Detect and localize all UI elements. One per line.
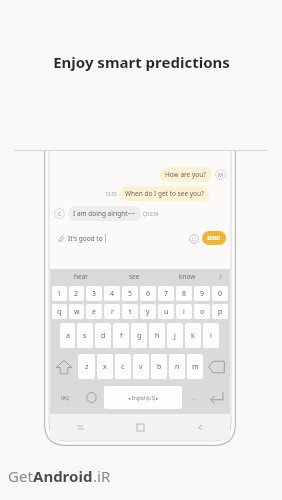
button[interactable]: When do I get to see you? <box>120 186 209 201</box>
staticText: e <box>92 307 96 317</box>
staticText: g <box>137 331 142 341</box>
button[interactable]: d <box>95 323 111 348</box>
staticText: Android <box>33 466 93 486</box>
button[interactable]: l <box>203 323 219 348</box>
button[interactable]: M <box>215 169 226 180</box>
staticText: 12:33 <box>105 191 117 197</box>
button[interactable]: ◂ English(US) ▸ <box>104 386 182 409</box>
button[interactable]: w <box>69 304 84 319</box>
button[interactable]: q <box>52 304 67 319</box>
button[interactable]: y <box>140 304 156 319</box>
staticText: h <box>155 331 160 341</box>
button[interactable]: 6 <box>140 286 156 301</box>
button[interactable]: u <box>158 304 174 319</box>
button[interactable]: g <box>131 323 147 348</box>
staticText: 2 <box>74 289 79 299</box>
staticText: j <box>174 331 176 341</box>
button[interactable]: 9 <box>194 286 210 301</box>
button[interactable]: Recents <box>50 414 110 440</box>
staticText: 8 <box>182 289 187 299</box>
button[interactable]: 8 <box>176 286 192 301</box>
button[interactable]: m <box>187 354 203 379</box>
button[interactable]: 7 <box>158 286 174 301</box>
button[interactable]: o <box>194 304 210 319</box>
button[interactable]: 5 <box>122 286 138 301</box>
button[interactable]: Enter <box>205 386 228 409</box>
staticText: 6 <box>146 289 151 299</box>
button[interactable]: hear <box>54 269 108 284</box>
staticText: know <box>179 272 196 281</box>
staticText: 9 <box>200 289 205 299</box>
button[interactable]: h <box>149 323 165 348</box>
staticText: Enjoy smart predictions <box>53 52 230 72</box>
button[interactable]: C <box>54 208 65 219</box>
staticText: . <box>193 394 195 402</box>
button[interactable]: a <box>60 323 75 348</box>
staticText: ◂ English(US) ▸ <box>128 395 159 401</box>
staticText: SEND <box>207 235 221 242</box>
button[interactable]: SEND <box>202 231 226 245</box>
button[interactable]: s <box>77 323 93 348</box>
staticText: 3 <box>92 289 97 299</box>
button[interactable]: x <box>97 354 113 379</box>
button[interactable]: Attach file <box>54 231 68 245</box>
button[interactable]: know <box>161 269 214 284</box>
button[interactable]: v <box>133 354 149 379</box>
button[interactable]: Backspace <box>205 355 228 379</box>
staticText: z <box>85 362 89 372</box>
button[interactable]: 4 <box>104 286 120 301</box>
staticText: b <box>157 362 162 372</box>
staticText: l <box>210 331 212 341</box>
button[interactable]: Shift <box>52 355 76 379</box>
button[interactable]: I am doing alright~~ <box>68 206 141 221</box>
button[interactable]: Home <box>110 414 170 440</box>
button[interactable]: e <box>86 304 102 319</box>
staticText: t <box>129 307 132 317</box>
button[interactable]: n <box>169 354 185 379</box>
button[interactable]: i <box>176 304 192 319</box>
staticText: I am doing alright~~ <box>73 209 136 218</box>
button[interactable]: 1 <box>52 286 67 301</box>
staticText: u <box>164 307 169 317</box>
button[interactable]: j <box>167 323 183 348</box>
staticText: y <box>146 307 150 317</box>
staticText: s <box>83 331 87 341</box>
button[interactable]: p <box>212 304 228 319</box>
staticText: d <box>101 331 106 341</box>
button[interactable]: Back <box>170 414 230 440</box>
button[interactable]: t <box>122 304 138 319</box>
staticText: 4 <box>110 289 115 299</box>
staticText: hear <box>74 272 89 281</box>
staticText: c <box>121 362 125 372</box>
staticText: f <box>120 331 123 341</box>
staticText: i <box>183 307 185 317</box>
staticText: m <box>192 362 199 372</box>
staticText: 7 <box>164 289 169 299</box>
button[interactable]: see <box>108 269 161 284</box>
button[interactable]: b <box>151 354 167 379</box>
staticText: C <box>58 210 62 217</box>
staticText: Get <box>8 466 33 486</box>
staticText: see <box>129 272 140 281</box>
button[interactable]: !#☺ <box>52 386 79 409</box>
button[interactable]: 2 <box>69 286 84 301</box>
staticText: !#☺ <box>61 395 70 401</box>
button[interactable]: Emoji <box>187 232 200 245</box>
button[interactable]: z <box>78 354 95 379</box>
button[interactable]: How are you? <box>160 167 212 182</box>
staticText: M <box>218 171 223 178</box>
staticText: It's good to <box>68 234 103 243</box>
button[interactable]: c <box>115 354 131 379</box>
staticText: a <box>66 331 70 341</box>
button[interactable]: k <box>185 323 201 348</box>
staticText: 5 <box>128 289 133 299</box>
staticText: When do I get to see you? <box>125 189 204 198</box>
button[interactable]: f <box>113 323 129 348</box>
button[interactable]: 0 <box>212 286 228 301</box>
button[interactable]: r <box>104 304 120 319</box>
button[interactable]: More suggestions <box>214 269 226 284</box>
button[interactable]: Settings <box>81 386 102 409</box>
staticText: q <box>57 307 62 317</box>
button[interactable]: 3 <box>86 286 102 301</box>
